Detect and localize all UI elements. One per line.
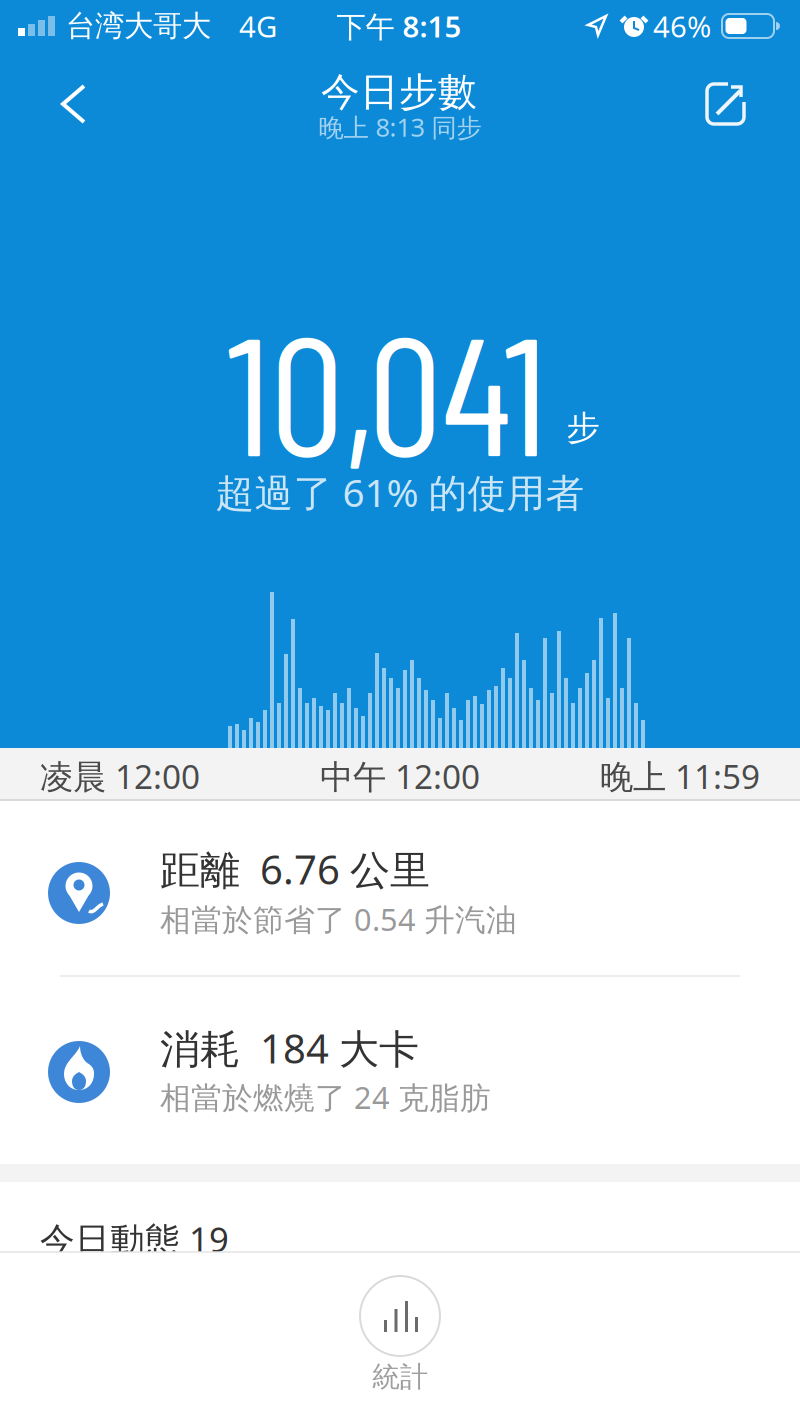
staticText: 凌晨 12:00	[40, 754, 200, 798]
staticText: 相當於節省了 0.54 升汽油	[160, 899, 517, 939]
staticText: 今日動態 19	[40, 1216, 229, 1262]
button[interactable]: Back	[42, 72, 106, 136]
staticText: 今日步數	[321, 68, 477, 116]
staticText: 晚上 8:13 同步	[318, 110, 481, 144]
staticText: 4G	[239, 6, 277, 45]
staticText: 下午 8:15	[336, 6, 461, 45]
staticText: 相當於燃燒了 24 克脂肪	[160, 1077, 491, 1117]
staticText: 中午 12:00	[320, 754, 480, 798]
staticText: 距離 6.76 公里	[160, 842, 430, 895]
staticText: 46%	[653, 6, 711, 45]
staticText: 步	[566, 407, 599, 448]
staticText: 晚上 11:59	[600, 754, 760, 798]
staticText: 台湾大哥大	[66, 8, 211, 44]
staticText: 10,041	[227, 289, 547, 489]
button[interactable]: 統計	[330, 1272, 470, 1402]
staticText: 消耗 184 大卡	[160, 1021, 419, 1074]
staticText: 超過了 61% 的使用者	[215, 466, 584, 518]
button[interactable]: Share	[695, 72, 759, 136]
staticText: 統計	[372, 1360, 428, 1394]
